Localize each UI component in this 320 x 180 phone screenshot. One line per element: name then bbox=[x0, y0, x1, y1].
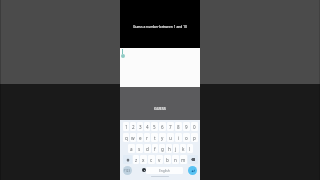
staticText: 2 bbox=[132, 124, 135, 130]
button[interactable]: a bbox=[128, 144, 135, 153]
button[interactable]: Symbols bbox=[123, 166, 132, 175]
button[interactable]: q bbox=[123, 133, 129, 142]
button[interactable]: f bbox=[152, 144, 158, 153]
button[interactable]: 9 bbox=[183, 122, 190, 131]
button[interactable]: b bbox=[164, 155, 171, 164]
button[interactable]: o bbox=[183, 133, 190, 142]
staticText: l bbox=[189, 146, 191, 152]
button[interactable]: 6 bbox=[159, 122, 166, 131]
button[interactable]: u bbox=[167, 133, 174, 142]
button[interactable]: v bbox=[156, 155, 163, 164]
button[interactable]: Backspace bbox=[188, 155, 198, 164]
staticText: h bbox=[168, 146, 171, 152]
button[interactable]: s bbox=[136, 144, 143, 153]
staticText: 4 bbox=[146, 124, 149, 130]
staticText: c bbox=[150, 157, 153, 163]
staticText: English bbox=[159, 169, 170, 173]
button[interactable]: n bbox=[172, 155, 179, 164]
button[interactable]: 5 bbox=[151, 122, 158, 131]
staticText: g bbox=[161, 146, 164, 152]
button[interactable]: x bbox=[140, 155, 147, 164]
staticText: m bbox=[181, 157, 186, 163]
button[interactable]: c bbox=[148, 155, 155, 164]
button[interactable]: 8 bbox=[175, 122, 182, 131]
button[interactable]: Shift bbox=[123, 155, 132, 164]
button[interactable]: English bbox=[146, 167, 183, 174]
button[interactable]: m bbox=[180, 155, 187, 164]
button[interactable]: 3 bbox=[137, 122, 143, 131]
staticText: 0 bbox=[193, 124, 196, 130]
button[interactable]: Emoji bbox=[142, 168, 146, 172]
button[interactable]: l bbox=[187, 144, 193, 153]
staticText: y bbox=[161, 135, 164, 141]
staticText: b bbox=[166, 157, 169, 163]
staticText: x bbox=[142, 157, 145, 163]
button[interactable]: e bbox=[137, 133, 143, 142]
staticText: 1 bbox=[125, 124, 128, 130]
button[interactable]: g bbox=[159, 144, 165, 153]
button[interactable]: y bbox=[159, 133, 166, 142]
button[interactable]: 2 bbox=[130, 122, 136, 131]
staticText: v bbox=[158, 157, 161, 163]
button[interactable]: h bbox=[166, 144, 172, 153]
button[interactable]: 4 bbox=[144, 122, 150, 131]
staticText: u bbox=[169, 135, 172, 141]
staticText: 7 bbox=[169, 124, 172, 130]
staticText: 8 bbox=[177, 124, 180, 130]
staticText: ?123 bbox=[124, 169, 131, 173]
staticText: q bbox=[125, 135, 128, 141]
button[interactable]: 0 bbox=[191, 122, 198, 131]
staticText: Guess a number between 1 and 10 bbox=[133, 24, 187, 28]
staticText: 9 bbox=[185, 124, 188, 130]
staticText: 6 bbox=[161, 124, 164, 130]
staticText: f bbox=[154, 146, 156, 152]
staticText: k bbox=[182, 146, 185, 152]
button[interactable]: j bbox=[173, 144, 179, 153]
staticText: t bbox=[154, 135, 156, 141]
button[interactable]: r bbox=[144, 133, 150, 142]
button[interactable]: t bbox=[151, 133, 158, 142]
button[interactable]: GUESS bbox=[151, 105, 169, 112]
staticText: p bbox=[193, 135, 196, 141]
staticText: s bbox=[138, 146, 141, 152]
staticText: z bbox=[135, 157, 138, 163]
staticText: a bbox=[130, 146, 133, 152]
button[interactable]: w bbox=[130, 133, 136, 142]
button[interactable]: 7 bbox=[167, 122, 174, 131]
button[interactable]: i bbox=[175, 133, 182, 142]
staticText: o bbox=[185, 135, 188, 141]
button[interactable]: Enter bbox=[188, 166, 197, 175]
staticText: GUESS bbox=[154, 106, 166, 111]
staticText: r bbox=[146, 135, 148, 141]
button[interactable]: p bbox=[191, 133, 198, 142]
staticText: d bbox=[146, 146, 149, 152]
button[interactable]: 1 bbox=[123, 122, 129, 131]
staticText: i bbox=[178, 135, 180, 141]
button[interactable]: k bbox=[180, 144, 186, 153]
staticText: n bbox=[174, 157, 177, 163]
staticText: j bbox=[175, 146, 177, 152]
button[interactable]: d bbox=[144, 144, 151, 153]
staticText: 3 bbox=[139, 124, 142, 130]
staticText: w bbox=[131, 135, 135, 141]
button[interactable]: z bbox=[133, 155, 139, 164]
staticText: 5 bbox=[153, 124, 156, 130]
staticText: e bbox=[139, 135, 142, 141]
